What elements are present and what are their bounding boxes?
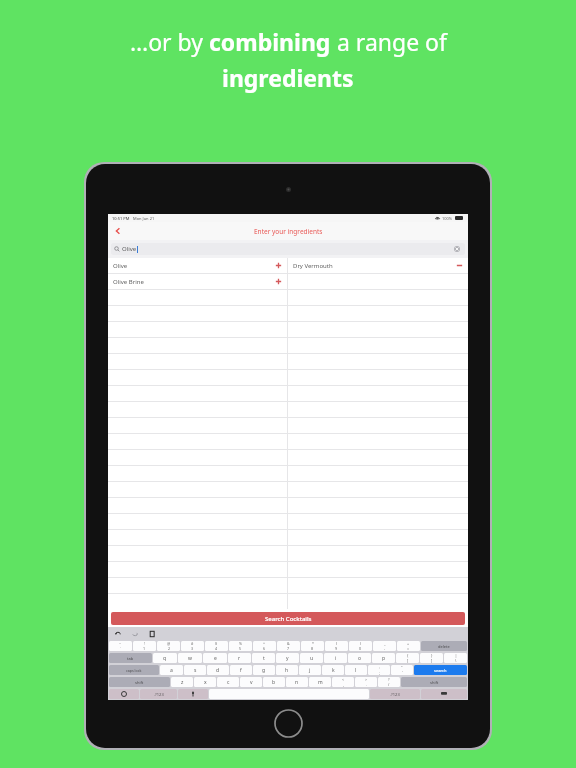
button[interactable]: v [240, 677, 262, 687]
button[interactable]: $ [205, 641, 228, 651]
button[interactable]: Dictate [178, 689, 208, 699]
button[interactable]: Clear text [452, 244, 462, 254]
staticText: l [355, 667, 357, 674]
button[interactable]: d [207, 665, 229, 675]
button[interactable]: ^ [253, 641, 276, 651]
button[interactable]: tab [109, 653, 152, 663]
staticText: Enter your ingredients [254, 227, 323, 236]
button[interactable]: u [300, 653, 323, 663]
staticText: < [342, 677, 345, 682]
button[interactable]: z [171, 677, 193, 687]
staticText: g [262, 667, 266, 674]
button[interactable]: r [228, 653, 251, 663]
button[interactable]: } [420, 653, 443, 663]
button[interactable]: y [276, 653, 299, 663]
button[interactable]: # [181, 641, 204, 651]
button[interactable]: Redo [130, 629, 139, 638]
button[interactable]: Emoji [109, 689, 139, 699]
button[interactable]: Olive Brine [108, 274, 287, 290]
button[interactable]: Hide keyboard [421, 689, 467, 699]
staticText: caps lock [126, 668, 142, 673]
staticText: p [382, 655, 386, 662]
button[interactable]: n [286, 677, 308, 687]
button[interactable]: j [299, 665, 321, 675]
staticText: 100% [442, 216, 453, 221]
button[interactable]: { [396, 653, 419, 663]
button[interactable]: t [252, 653, 275, 663]
staticText: 2 [168, 646, 171, 651]
button[interactable]: w [178, 653, 202, 663]
staticText: Dry Vermouth [293, 262, 333, 270]
button[interactable]: x [194, 677, 216, 687]
button[interactable]: shift [109, 677, 170, 687]
button[interactable]: delete [421, 641, 467, 651]
staticText: ( [336, 641, 338, 646]
staticText: search [434, 668, 447, 673]
button[interactable]: a [160, 665, 183, 675]
button[interactable]: .?123 [370, 689, 420, 699]
staticText: ! [144, 641, 145, 646]
button[interactable]: & [277, 641, 300, 651]
button[interactable]: i [324, 653, 347, 663]
staticText: 5 [239, 646, 242, 651]
button[interactable]: p [372, 653, 395, 663]
button[interactable]: Paste [147, 629, 156, 638]
staticText: ^ [263, 641, 266, 646]
button[interactable]: @ [157, 641, 180, 651]
button[interactable]: Back [111, 224, 125, 238]
staticText: 8 [311, 646, 314, 651]
button[interactable]: e [203, 653, 227, 663]
staticText: 3 [191, 646, 194, 651]
staticText: 10:51 PM [112, 216, 130, 221]
button[interactable]: * [301, 641, 324, 651]
button[interactable]: ~ [109, 641, 132, 651]
staticText: | [455, 653, 457, 658]
button[interactable]: m [309, 677, 331, 687]
button[interactable]: f [230, 665, 252, 675]
button[interactable]: ) [349, 641, 372, 651]
button[interactable]: < [332, 677, 354, 687]
staticText: \ [455, 658, 457, 663]
staticText: ~ [119, 641, 122, 646]
staticText: shift [430, 680, 439, 685]
button[interactable]: c [217, 677, 239, 687]
button[interactable]: _ [373, 641, 396, 651]
button[interactable]: s [184, 665, 206, 675]
staticText: @ [167, 641, 171, 646]
button[interactable]: g [253, 665, 275, 675]
button[interactable]: Dry Vermouth [288, 258, 468, 274]
button[interactable]: h [276, 665, 298, 675]
button[interactable]: l [345, 665, 367, 675]
button[interactable]: ! [133, 641, 156, 651]
button[interactable]: b [263, 677, 285, 687]
button[interactable]: q [153, 653, 177, 663]
button[interactable]: % [229, 641, 252, 651]
button[interactable]: Search Cocktails [111, 612, 465, 625]
button[interactable]: Olive [108, 258, 287, 274]
button[interactable]: ? [378, 677, 400, 687]
button[interactable]: " [391, 665, 413, 675]
button[interactable]: o [348, 653, 371, 663]
staticText: / [388, 682, 390, 687]
button[interactable]: search [414, 665, 467, 675]
button[interactable]: Olive [111, 243, 465, 255]
button[interactable]: Undo [113, 629, 122, 638]
staticText: Search Cocktails [265, 615, 312, 623]
button[interactable]: caps lock [109, 665, 159, 675]
button[interactable]: : [368, 665, 390, 675]
staticText: # [191, 641, 194, 646]
staticText: ' [402, 670, 403, 675]
button[interactable]: ( [325, 641, 348, 651]
button[interactable]: .?123 [140, 689, 177, 699]
staticText: z [181, 679, 184, 686]
staticText: 4 [215, 646, 218, 651]
staticText: ? [388, 677, 390, 682]
button[interactable]: k [322, 665, 344, 675]
button[interactable]: > [355, 677, 377, 687]
staticText: Olive [113, 262, 128, 270]
staticText: Mon Jun 21 [133, 216, 155, 221]
button[interactable]: + [397, 641, 420, 651]
button[interactable]: shift [401, 677, 467, 687]
button[interactable]: | [444, 653, 467, 663]
